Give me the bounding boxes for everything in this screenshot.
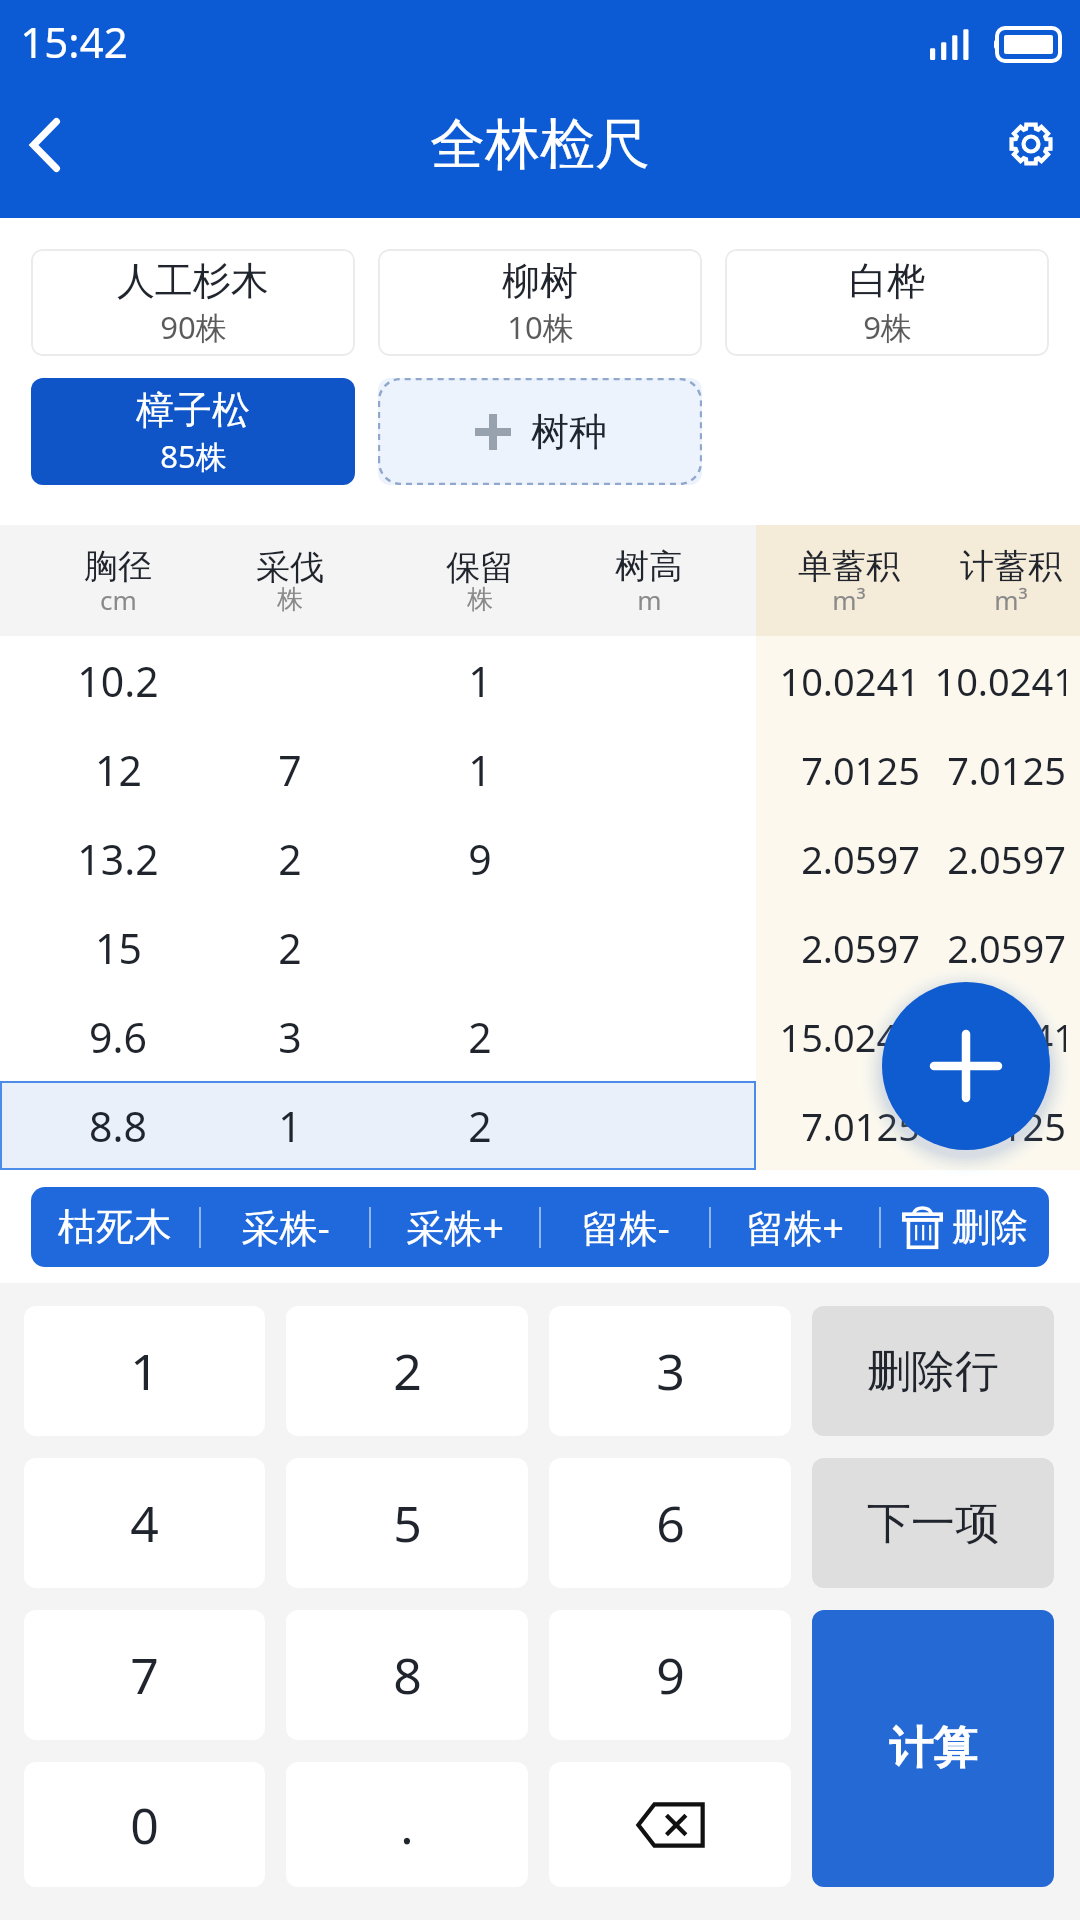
staticText: 3 <box>656 1337 685 1405</box>
button[interactable]: 0 <box>24 1762 265 1887</box>
staticText: 采株- <box>241 1201 330 1253</box>
button[interactable]: . <box>286 1762 528 1887</box>
staticText: 删除 <box>952 1203 1028 1251</box>
staticText: 2 <box>468 1098 492 1154</box>
button[interactable]: 1 <box>374 725 586 814</box>
staticText: m³ <box>994 582 1028 617</box>
button[interactable]: Settings <box>990 103 1072 185</box>
staticText: 7 <box>130 1641 159 1709</box>
staticText: 9.6 <box>89 1009 147 1065</box>
staticText: 2 <box>468 1009 492 1065</box>
button[interactable]: 柳树 <box>378 249 702 356</box>
button[interactable]: 人工杉木 <box>31 249 355 356</box>
staticText: 9 <box>468 831 492 887</box>
staticText: 7 <box>278 742 302 798</box>
button[interactable]: 9.6 <box>30 992 206 1081</box>
staticText: 2.0597 <box>947 833 1066 885</box>
staticText: 15 <box>95 920 142 976</box>
button[interactable]: 15 <box>30 903 206 992</box>
button[interactable]: 采株+ <box>371 1187 539 1267</box>
button[interactable]: 2 <box>286 1306 528 1436</box>
button[interactable]: 1 <box>374 636 586 725</box>
button[interactable]: 12 <box>30 725 206 814</box>
staticText: 1 <box>130 1337 159 1405</box>
button[interactable]: 1 <box>24 1306 265 1436</box>
button[interactable]: 樟子松 <box>31 378 355 485</box>
staticText: 1 <box>278 1098 302 1154</box>
staticText: 计蓄积 <box>960 545 1062 588</box>
button[interactable]: 删除 <box>881 1187 1049 1267</box>
button[interactable]: 3 <box>549 1306 791 1436</box>
staticText: 2 <box>278 831 302 887</box>
staticText: 保留 <box>446 546 514 589</box>
staticText: 胸径 <box>84 545 152 588</box>
staticText: 采伐 <box>256 546 324 589</box>
staticText: 15.0241 <box>779 1011 920 1063</box>
staticText: 全林检尺 <box>430 110 650 179</box>
button[interactable] <box>586 1081 712 1170</box>
staticText: 枯死木 <box>58 1203 172 1251</box>
button[interactable]: 枯死木 <box>31 1187 199 1267</box>
button[interactable]: 6 <box>549 1458 791 1588</box>
button[interactable]: 2 <box>206 903 374 992</box>
staticText: 15:42 <box>20 13 128 70</box>
button[interactable]: 10.2 <box>30 636 206 725</box>
button[interactable]: 计算 <box>812 1610 1054 1887</box>
button[interactable]: 白桦 <box>725 249 1049 356</box>
button[interactable]: 2 <box>374 1081 586 1170</box>
button[interactable]: 4 <box>24 1458 265 1588</box>
button[interactable]: 采株- <box>201 1187 369 1267</box>
button[interactable]: 7 <box>206 725 374 814</box>
button[interactable]: 5 <box>286 1458 528 1588</box>
staticText: cm <box>100 582 137 617</box>
staticText: 8.8 <box>89 1098 147 1154</box>
staticText: 樟子松 <box>136 386 250 434</box>
staticText: 2.0597 <box>801 922 920 974</box>
button[interactable]: 2 <box>374 992 586 1081</box>
button[interactable]: 8 <box>286 1610 528 1740</box>
staticText: 株 <box>467 583 493 616</box>
staticText: m³ <box>832 582 866 617</box>
button[interactable]: 2 <box>206 814 374 903</box>
button[interactable]: 7 <box>24 1610 265 1740</box>
button[interactable]: 13.2 <box>30 814 206 903</box>
button[interactable]: 9 <box>549 1610 791 1740</box>
staticText: 9 <box>656 1641 685 1709</box>
staticText: 3 <box>278 1009 302 1065</box>
staticText: 1 <box>468 653 492 709</box>
button[interactable]: 树种 <box>378 378 702 485</box>
staticText: 85株 <box>160 435 227 477</box>
staticText: 采株+ <box>406 1201 504 1253</box>
staticText: 7.0125 <box>801 1100 920 1152</box>
button[interactable]: 留株- <box>541 1187 709 1267</box>
button[interactable]: 3 <box>206 992 374 1081</box>
staticText: 下一项 <box>867 1496 999 1551</box>
button[interactable]: 留株+ <box>711 1187 879 1267</box>
button[interactable]: Add row <box>882 982 1050 1150</box>
staticText: . <box>400 1791 414 1859</box>
staticText: 树高 <box>615 545 683 588</box>
staticText: 2 <box>393 1337 422 1405</box>
staticText: 8 <box>393 1641 422 1709</box>
button[interactable]: Back <box>0 100 89 189</box>
staticText: 2.0597 <box>947 922 1066 974</box>
staticText: 10.2 <box>77 653 159 709</box>
button[interactable]: 1 <box>206 1081 374 1170</box>
button[interactable]: Backspace <box>549 1762 791 1887</box>
staticText: 树种 <box>531 408 607 456</box>
button[interactable]: 下一项 <box>812 1458 1054 1588</box>
staticText: 柳树 <box>502 257 578 305</box>
staticText: 1 <box>468 742 492 798</box>
button[interactable]: 8.8 <box>30 1081 206 1170</box>
button[interactable]: 9 <box>374 814 586 903</box>
staticText: 7.0125 <box>801 744 920 796</box>
button[interactable]: 删除行 <box>812 1306 1054 1436</box>
staticText: 12 <box>95 742 142 798</box>
